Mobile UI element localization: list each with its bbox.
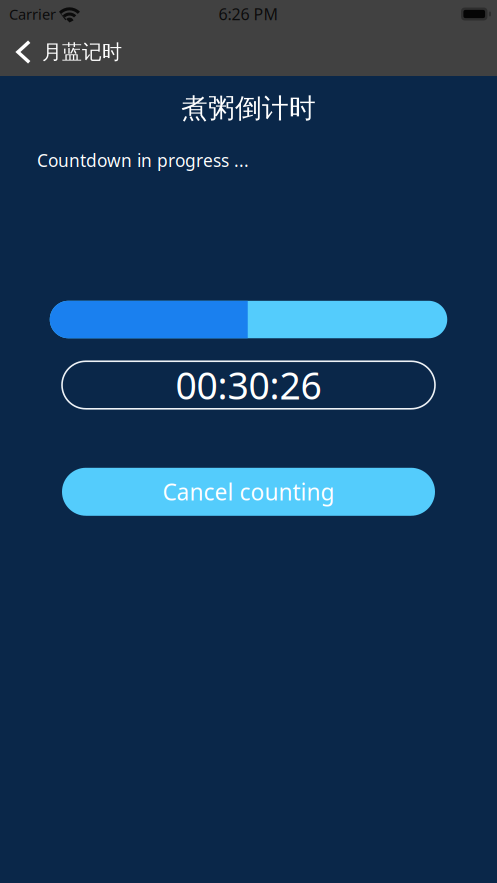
staticText: 6:26 PM — [218, 3, 278, 25]
button[interactable]: Cancel counting — [62, 468, 435, 516]
staticText: Cancel counting — [162, 477, 334, 507]
staticText: Carrier — [9, 4, 56, 24]
staticText: Countdown in progress ... — [37, 149, 249, 172]
button[interactable]: Back to 月蓝记时 — [0, 28, 136, 76]
staticText: 月蓝记时 — [42, 40, 122, 64]
staticText: 00:30:26 — [175, 360, 321, 410]
staticText: 煮粥倒计时 — [181, 92, 316, 125]
